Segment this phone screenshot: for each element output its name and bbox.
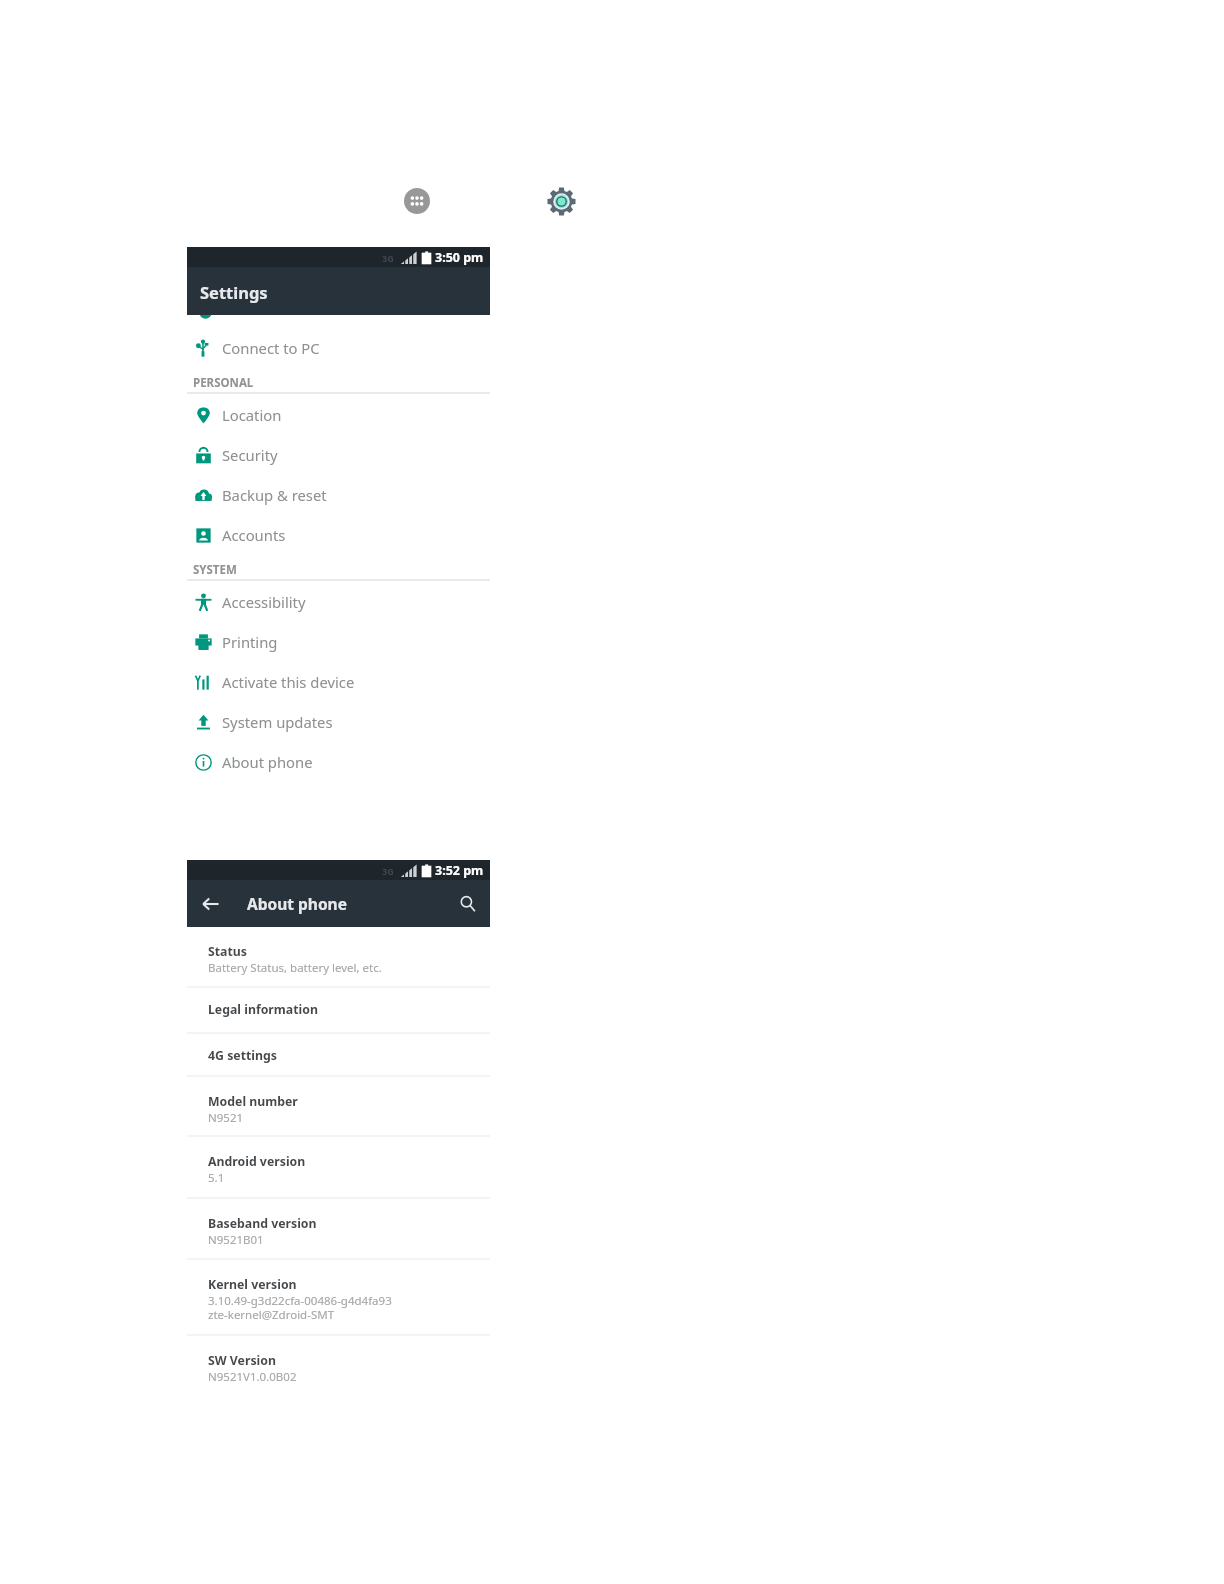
button[interactable]: Location bbox=[187, 395, 490, 435]
button[interactable]: Settings bbox=[546, 186, 576, 216]
button[interactable]: Accessibility bbox=[187, 582, 490, 622]
staticText: Backup & reset bbox=[222, 485, 327, 505]
staticText: 5.1 bbox=[208, 1170, 225, 1186]
staticText: Android version bbox=[208, 1153, 306, 1170]
button[interactable]: Activate this device bbox=[187, 662, 490, 702]
staticText: Accounts bbox=[222, 525, 286, 545]
staticText: PERSONAL bbox=[193, 375, 254, 391]
button[interactable]: Kernel version bbox=[187, 1260, 490, 1336]
staticText: Kernel version bbox=[208, 1276, 297, 1293]
staticText: Legal information bbox=[208, 1001, 318, 1018]
button[interactable]: Search bbox=[454, 890, 482, 918]
staticText: SYSTEM bbox=[193, 562, 237, 578]
button[interactable]: Status bbox=[187, 927, 490, 988]
staticText: Accessibility bbox=[222, 592, 306, 612]
button[interactable]: Model number bbox=[187, 1077, 490, 1137]
button[interactable]: Android version bbox=[187, 1137, 490, 1199]
staticText: Settings bbox=[200, 281, 268, 303]
staticText: SW Version bbox=[208, 1352, 276, 1369]
staticText: About phone bbox=[222, 752, 313, 772]
staticText: 4G settings bbox=[208, 1047, 277, 1064]
staticText: 3G bbox=[382, 252, 394, 264]
staticText: 3:50 pm bbox=[435, 249, 484, 266]
staticText: Connect to PC bbox=[222, 338, 320, 358]
button[interactable]: Apps bbox=[404, 188, 430, 214]
staticText: Security bbox=[222, 445, 278, 465]
button[interactable]: Back bbox=[196, 889, 226, 919]
staticText: System updates bbox=[222, 712, 333, 732]
staticText: N9521V1.0.0B02 bbox=[208, 1369, 297, 1385]
staticText: 3:52 pm bbox=[435, 862, 484, 879]
button[interactable]: Legal information bbox=[187, 988, 490, 1034]
button[interactable]: SW Version bbox=[187, 1336, 490, 1396]
button[interactable]: About phone bbox=[187, 742, 490, 782]
button[interactable]: 4G settings bbox=[187, 1034, 490, 1077]
staticText: Printing bbox=[222, 632, 278, 652]
button[interactable]: Connect to PC bbox=[187, 328, 490, 368]
staticText: Baseband version bbox=[208, 1215, 317, 1232]
staticText: Battery Status, battery level, etc. bbox=[208, 960, 382, 976]
button[interactable]: Security bbox=[187, 435, 490, 475]
staticText: Status bbox=[208, 943, 247, 960]
staticText: N9521 bbox=[208, 1110, 244, 1126]
button[interactable]: Accounts bbox=[187, 515, 490, 555]
staticText: Activate this device bbox=[222, 672, 355, 692]
staticText: 3G bbox=[382, 865, 394, 877]
button[interactable]: Backup & reset bbox=[187, 475, 490, 515]
staticText: Model number bbox=[208, 1093, 298, 1110]
button[interactable]: System updates bbox=[187, 702, 490, 742]
staticText: About phone bbox=[247, 893, 347, 914]
staticText: 3.10.49-g3d22cfa-00486-g4d4fa93 zte-kern… bbox=[208, 1293, 392, 1322]
staticText: N9521B01 bbox=[208, 1232, 264, 1248]
button[interactable]: Baseband version bbox=[187, 1199, 490, 1260]
staticText: Location bbox=[222, 405, 282, 425]
button[interactable]: Printing bbox=[187, 622, 490, 662]
